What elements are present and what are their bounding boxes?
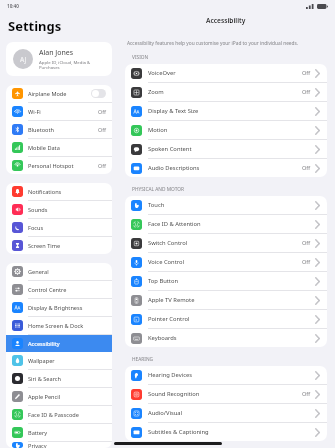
staticText: Siri & Search [28,375,106,383]
staticText: AJ [20,55,27,64]
button[interactable]: Face ID & Attention [125,215,327,233]
staticText: Voice Control [148,258,302,266]
button[interactable]: General [6,263,112,280]
staticText: Off [302,390,311,398]
button[interactable]: Audio/Visual [125,404,327,422]
staticText: Apple Pencil [28,393,106,401]
button[interactable]: Display & Text Size [125,102,327,120]
staticText: Off [302,164,311,172]
button[interactable]: AJ [6,42,112,76]
button[interactable]: Touch [125,196,327,214]
button[interactable]: Audio Descriptions [125,159,327,177]
button[interactable]: Display & Brightness [6,299,112,316]
staticText: Privacy [28,442,106,448]
staticText: Hearing Devices [148,371,315,379]
staticText: Apple ID, iCloud, Media & Purchases [39,59,105,70]
staticText: Audio Descriptions [148,164,302,172]
staticText: Spoken Content [148,145,315,153]
button[interactable]: Accessibility [6,335,112,352]
staticText: Keyboards [148,334,315,342]
button[interactable]: Wallpaper [6,352,112,369]
staticText: Screen Time [28,242,106,250]
button[interactable]: Mobile Data [6,139,112,156]
staticText: 10:40 [7,3,19,9]
button[interactable]: Switch Control [125,234,327,252]
staticText: Settings [8,17,62,35]
staticText: Home Screen & Dock [28,322,106,330]
staticText: Off [98,108,106,115]
staticText: Switch Control [148,239,302,247]
button[interactable]: Airplane Mode [6,85,112,102]
staticText: Control Centre [28,286,106,294]
staticText: Off [302,69,311,77]
button[interactable]: Control Centre [6,281,112,298]
button[interactable]: Voice Control [125,253,327,271]
staticText: Accessibility features help you customis… [127,40,299,47]
button[interactable]: Privacy [6,442,112,448]
staticText: Off [302,258,311,266]
button[interactable]: Apple Pencil [6,388,112,405]
button[interactable]: Notifications [6,183,112,200]
staticText: Motion [148,126,315,134]
staticText: Touch [148,201,315,209]
staticText: Accessibility [206,16,246,25]
button[interactable]: Pointer Control [125,310,327,328]
button[interactable]: Wi-Fi [6,103,112,120]
staticText: Bluetooth [28,126,98,134]
button[interactable]: VoiceOver [125,64,327,82]
staticText: Off [98,162,106,169]
button[interactable]: Motion [125,121,327,139]
staticText: Face ID & Passcode [28,411,106,419]
button[interactable]: Bluetooth [6,121,112,138]
button[interactable]: Top Button [125,272,327,290]
button[interactable]: Airplane Mode toggle [91,89,106,98]
staticText: Zoom [148,88,302,96]
button[interactable]: Sound Recognition [125,385,327,403]
staticText: Off [98,126,106,133]
staticText: Notifications [28,188,106,196]
button[interactable]: Hearing Devices [125,366,327,384]
button[interactable]: Subtitles & Captioning [125,423,327,441]
staticText: Personal Hotspot [28,162,98,170]
staticText: Alan Jones [39,48,74,58]
button[interactable]: Spoken Content [125,140,327,158]
staticText: Airplane Mode [28,90,91,98]
staticText: Focus [28,224,106,232]
staticText: HEARING [132,356,154,363]
button[interactable]: Screen Time [6,237,112,254]
button[interactable]: Face ID & Passcode [6,406,112,423]
staticText: Display & Text Size [148,107,315,115]
staticText: Mobile Data [28,144,106,152]
button[interactable]: Battery [6,424,112,441]
staticText: Sound Recognition [148,390,302,398]
button[interactable]: Sounds [6,201,112,218]
staticText: Off [302,239,311,247]
button[interactable]: Keyboards [125,329,327,347]
button[interactable]: Personal Hotspot [6,157,112,174]
staticText: Sounds [28,206,106,214]
button[interactable]: Siri & Search [6,370,112,387]
button[interactable]: Home Screen & Dock [6,317,112,334]
staticText: Face ID & Attention [148,220,315,228]
staticText: Wallpaper [28,357,106,365]
staticText: Off [302,88,311,96]
staticText: Accessibility [28,340,106,348]
button[interactable]: Focus [6,219,112,236]
staticText: VoiceOver [148,69,302,77]
staticText: General [28,268,106,276]
button[interactable]: Apple TV Remote [125,291,327,309]
staticText: Display & Brightness [28,304,106,312]
staticText: Audio/Visual [148,409,315,417]
staticText: VISION [132,54,149,61]
staticText: Top Button [148,277,315,285]
staticText: Wi-Fi [28,108,98,116]
staticText: Battery [28,429,106,437]
staticText: Subtitles & Captioning [148,428,315,436]
button[interactable]: Zoom [125,83,327,101]
staticText: PHYSICAL AND MOTOR [132,186,185,193]
staticText: Pointer Control [148,315,315,323]
staticText: Apple TV Remote [148,296,315,304]
